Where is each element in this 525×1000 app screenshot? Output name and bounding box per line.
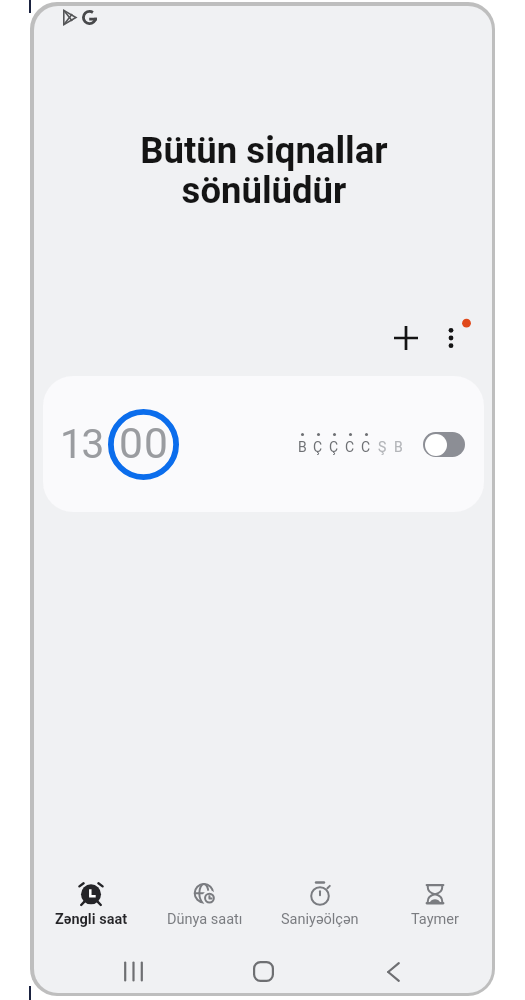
staticText: Zəngli saat xyxy=(55,911,128,928)
staticText: B xyxy=(394,439,403,455)
button[interactable]: 13 xyxy=(43,376,484,512)
button[interactable]: Saniyəölçən xyxy=(262,876,377,928)
button[interactable]: Recent apps xyxy=(68,955,198,988)
staticText: C xyxy=(361,439,371,455)
staticText: Taymer xyxy=(411,911,459,928)
staticText: 13 xyxy=(60,420,104,467)
staticText: Ç xyxy=(313,439,323,455)
staticText: Ş xyxy=(378,439,387,455)
button[interactable]: Home xyxy=(198,955,328,988)
button[interactable]: Alarm on off toggle xyxy=(423,432,465,457)
button[interactable]: Taymer xyxy=(377,876,492,928)
button[interactable]: More options xyxy=(427,314,475,362)
staticText: Bütün siqnallar sönülüdür xyxy=(35,129,492,212)
staticText: B xyxy=(298,439,307,455)
staticText: Ç xyxy=(329,439,339,455)
staticText: 00 xyxy=(119,419,169,469)
staticText: C xyxy=(345,439,355,455)
button[interactable]: Dünya saatı xyxy=(148,876,262,928)
staticText: Saniyəölçən xyxy=(281,911,359,928)
button[interactable]: Back xyxy=(328,955,458,988)
staticText: Dünya saatı xyxy=(167,911,243,928)
button[interactable]: Zəngli saat xyxy=(34,876,148,928)
button[interactable]: Add alarm xyxy=(382,314,430,362)
